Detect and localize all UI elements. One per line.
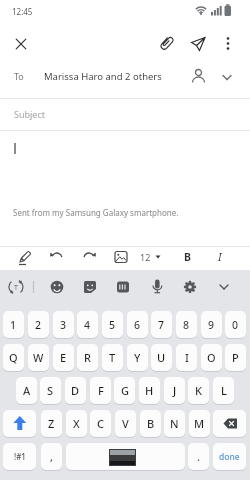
button[interactable]: 1: [3, 311, 24, 338]
staticText: C: [97, 416, 104, 431]
button[interactable]: 2: [28, 311, 49, 338]
button[interactable]: G: [114, 377, 135, 404]
button[interactable]: [216, 31, 240, 55]
button[interactable]: K: [188, 377, 209, 404]
staticText: O: [207, 350, 216, 365]
button[interactable]: To: [0, 58, 250, 98]
button[interactable]: Sent from my Samsung Galaxy smartphone.: [0, 131, 250, 246]
button[interactable]: 8: [176, 311, 197, 338]
button[interactable]: [186, 31, 210, 55]
button[interactable]: R: [77, 344, 98, 371]
button[interactable]: Z: [41, 410, 62, 437]
button[interactable]: [176, 246, 200, 269]
staticText: 5: [109, 318, 116, 332]
button[interactable]: L: [213, 377, 234, 404]
staticText: 12:45: [12, 6, 33, 17]
staticText: 6: [134, 318, 141, 332]
staticText: 9: [208, 318, 215, 332]
button[interactable]: E: [53, 344, 74, 371]
button[interactable]: D: [65, 377, 86, 404]
button[interactable]: H: [139, 377, 160, 404]
staticText: .: [197, 449, 200, 464]
staticText: Q: [9, 350, 18, 365]
button[interactable]: [110, 274, 136, 300]
staticText: A: [23, 383, 31, 398]
button[interactable]: ,: [41, 443, 62, 470]
staticText: F: [98, 383, 104, 398]
button[interactable]: F: [90, 377, 111, 404]
staticText: S: [47, 383, 54, 398]
staticText: G: [121, 383, 129, 398]
staticText: 8: [183, 318, 190, 332]
button[interactable]: [45, 246, 69, 269]
button[interactable]: X: [66, 410, 87, 437]
staticText: B: [184, 250, 191, 264]
button[interactable]: V: [115, 410, 136, 437]
button[interactable]: [109, 246, 133, 269]
button[interactable]: [77, 274, 103, 300]
button[interactable]: W: [28, 344, 49, 371]
staticText: V: [122, 416, 129, 431]
staticText: To: [14, 70, 24, 82]
button[interactable]: 3: [53, 311, 74, 338]
button[interactable]: !#1: [3, 443, 36, 470]
staticText: K: [195, 383, 202, 398]
staticText: 3: [60, 318, 67, 332]
button[interactable]: [207, 246, 231, 269]
staticText: N: [170, 416, 179, 431]
button[interactable]: J: [164, 377, 185, 404]
staticText: 7: [158, 318, 165, 332]
button[interactable]: U: [151, 344, 172, 371]
button[interactable]: [77, 246, 101, 269]
button[interactable]: [66, 443, 185, 470]
staticText: Z: [48, 416, 55, 431]
button[interactable]: [9, 32, 33, 56]
button[interactable]: 4: [77, 311, 98, 338]
button[interactable]: Q: [3, 344, 24, 371]
button[interactable]: A: [16, 377, 37, 404]
button[interactable]: Y: [127, 344, 148, 371]
button[interactable]: B: [140, 410, 161, 437]
button[interactable]: [3, 410, 36, 437]
staticText: 12: [140, 251, 151, 263]
button[interactable]: 0: [225, 311, 246, 338]
button[interactable]: O: [201, 344, 222, 371]
staticText: X: [73, 416, 80, 431]
staticText: I: [218, 249, 222, 264]
button[interactable]: 9: [201, 311, 222, 338]
button[interactable]: C: [90, 410, 111, 437]
button[interactable]: P: [225, 344, 246, 371]
button[interactable]: [13, 246, 37, 269]
button[interactable]: [177, 274, 203, 300]
staticText: J: [173, 383, 177, 398]
button[interactable]: I: [176, 344, 197, 371]
staticText: Marissa Haro and 2 others: [44, 70, 162, 83]
button[interactable]: done: [213, 443, 246, 470]
button[interactable]: [144, 274, 170, 300]
button[interactable]: [155, 31, 179, 55]
staticText: 1: [10, 318, 17, 332]
button[interactable]: N: [164, 410, 185, 437]
button[interactable]: [3, 274, 29, 300]
button[interactable]: T: [102, 344, 123, 371]
button[interactable]: [213, 410, 246, 437]
button[interactable]: 7: [151, 311, 172, 338]
button[interactable]: 5: [102, 311, 123, 338]
staticText: E: [60, 350, 67, 365]
button[interactable]: Subject: [0, 99, 250, 130]
staticText: B: [147, 416, 155, 431]
staticText: Y: [134, 350, 141, 365]
button[interactable]: [211, 274, 237, 300]
button[interactable]: M: [189, 410, 210, 437]
staticText: 2: [35, 318, 42, 332]
staticText: R: [84, 350, 91, 365]
button[interactable]: [140, 246, 164, 269]
staticText: L: [221, 383, 227, 398]
button[interactable]: .: [188, 443, 209, 470]
button[interactable]: S: [40, 377, 61, 404]
staticText: 4: [84, 318, 91, 332]
staticText: !#1: [14, 451, 26, 462]
button[interactable]: 6: [127, 311, 148, 338]
button[interactable]: [44, 274, 70, 300]
staticText: P: [232, 350, 239, 365]
